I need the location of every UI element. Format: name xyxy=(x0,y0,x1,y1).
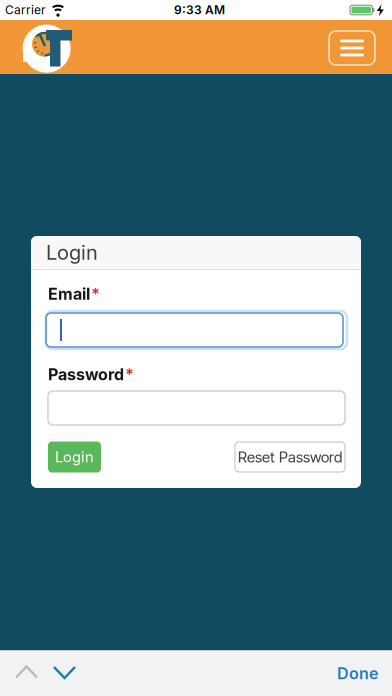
staticText: Login xyxy=(55,448,94,466)
button[interactable]: Password xyxy=(48,391,345,425)
button[interactable]: Login xyxy=(48,441,101,472)
staticText: Reset Password xyxy=(238,448,342,466)
button[interactable]: Reset Password xyxy=(235,442,345,472)
staticText: Carrier xyxy=(5,3,46,17)
button[interactable]: Menu xyxy=(329,31,375,65)
button[interactable]: Previous field xyxy=(14,664,38,679)
button[interactable]: Done xyxy=(337,664,392,683)
staticText: * xyxy=(125,365,134,384)
staticText: Password xyxy=(48,365,124,384)
staticText: Done xyxy=(337,664,378,683)
staticText: Login xyxy=(46,241,98,264)
staticText: 9:33 AM xyxy=(174,3,225,17)
staticText: Email xyxy=(48,285,90,303)
button[interactable]: Email xyxy=(48,313,345,347)
button[interactable]: Next field xyxy=(52,665,76,680)
staticText: * xyxy=(91,285,100,303)
